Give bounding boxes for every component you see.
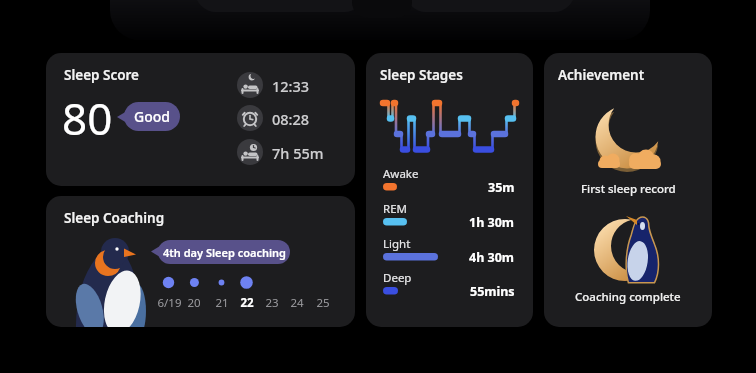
staticText: Good bbox=[134, 107, 170, 126]
staticText: 4h 30m bbox=[469, 249, 515, 266]
staticText: 4th day Sleep coaching bbox=[163, 245, 286, 260]
staticText: 7h 55m bbox=[272, 143, 324, 163]
button[interactable]: Achievement bbox=[544, 53, 712, 327]
staticText: Coaching complete bbox=[575, 289, 681, 305]
staticText: 55mins bbox=[470, 283, 515, 300]
button[interactable]: Sleep Stages bbox=[366, 53, 533, 327]
button[interactable]: Sleep Coaching bbox=[46, 196, 355, 327]
staticText: 24 bbox=[290, 295, 304, 311]
staticText: Sleep Stages bbox=[380, 66, 463, 84]
staticText: 21 bbox=[215, 295, 229, 311]
button[interactable]: 4th day Sleep coaching bbox=[158, 240, 290, 264]
staticText: First sleep record bbox=[581, 181, 676, 197]
staticText: Deep bbox=[383, 270, 412, 286]
staticText: 25 bbox=[316, 295, 330, 311]
staticText: 1h 30m bbox=[469, 214, 515, 231]
staticText: 35m bbox=[488, 179, 515, 196]
staticText: Sleep Score bbox=[64, 66, 140, 84]
staticText: 12:33 bbox=[272, 76, 310, 96]
staticText: Light bbox=[383, 236, 411, 252]
staticText: Awake bbox=[383, 166, 419, 182]
staticText: 22 bbox=[240, 295, 254, 311]
staticText: 20 bbox=[187, 295, 201, 311]
staticText: Sleep Coaching bbox=[64, 209, 165, 227]
staticText: 08:28 bbox=[272, 109, 310, 129]
staticText: 80 bbox=[62, 88, 113, 148]
button[interactable]: Sleep Score bbox=[46, 53, 355, 186]
staticText: 23 bbox=[265, 295, 279, 311]
staticText: REM bbox=[383, 201, 407, 217]
staticText: Achievement bbox=[558, 66, 645, 84]
staticText: 6/19 bbox=[157, 295, 182, 311]
button[interactable]: Good bbox=[124, 102, 180, 131]
